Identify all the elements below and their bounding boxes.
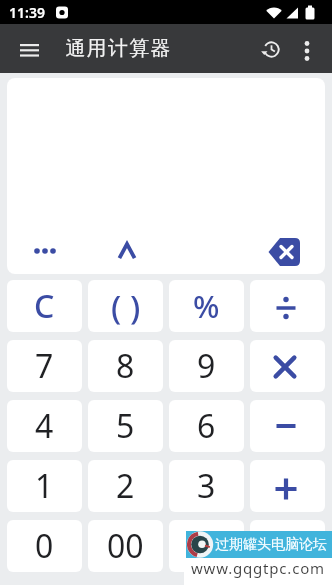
button[interactable] — [10, 30, 48, 68]
staticText: 7 — [35, 344, 54, 388]
button[interactable] — [252, 31, 290, 69]
button[interactable]: 5 — [88, 400, 163, 452]
button[interactable] — [250, 460, 325, 512]
staticText: . — [202, 524, 211, 568]
button[interactable] — [264, 234, 304, 270]
button[interactable]: 8 — [88, 340, 163, 392]
staticText: = — [279, 526, 297, 567]
button[interactable] — [250, 400, 325, 452]
button[interactable]: . — [169, 520, 244, 572]
button[interactable]: ( ) — [88, 280, 163, 332]
button[interactable] — [250, 340, 325, 392]
button[interactable]: 9 — [169, 340, 244, 392]
staticText: 6 — [197, 404, 216, 448]
staticText: ( ) — [111, 284, 141, 329]
staticText: 2 — [116, 464, 135, 508]
button[interactable]: C — [7, 280, 82, 332]
staticText: 4 — [35, 404, 54, 448]
button[interactable]: 0 — [7, 520, 82, 572]
staticText: % — [193, 285, 220, 327]
staticText: 过期罐头电脑论坛 — [215, 536, 327, 554]
button[interactable]: 6 — [169, 400, 244, 452]
staticText: 11:39 — [9, 3, 45, 22]
staticText: C — [34, 284, 55, 328]
button[interactable] — [250, 280, 325, 332]
button[interactable]: % — [169, 280, 244, 332]
staticText: www.gqgtpc.com — [191, 558, 325, 578]
button[interactable]: 1 — [7, 460, 82, 512]
button[interactable]: 2 — [88, 460, 163, 512]
staticText: 通用计算器 — [65, 36, 171, 61]
button[interactable]: 00 — [88, 520, 163, 572]
button[interactable] — [292, 32, 322, 70]
staticText: 0 — [35, 524, 54, 568]
staticText: 00 — [107, 524, 144, 568]
staticText: 8 — [116, 344, 135, 388]
button[interactable]: 3 — [169, 460, 244, 512]
button[interactable] — [24, 236, 66, 266]
button[interactable]: 4 — [7, 400, 82, 452]
staticText: 3 — [197, 464, 216, 508]
staticText: 1 — [35, 464, 54, 508]
button[interactable]: = — [250, 520, 325, 572]
button[interactable] — [108, 236, 146, 266]
button[interactable]: 7 — [7, 340, 82, 392]
staticText: 9 — [197, 344, 216, 388]
staticText: 5 — [116, 404, 135, 448]
